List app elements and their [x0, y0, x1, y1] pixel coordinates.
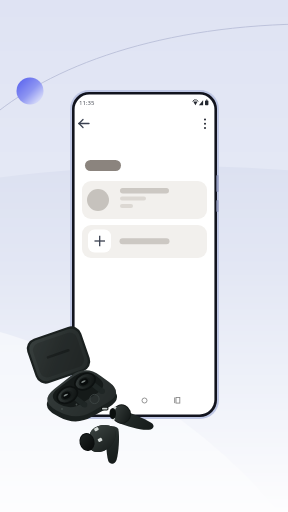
staticText: 11:35	[79, 99, 95, 107]
